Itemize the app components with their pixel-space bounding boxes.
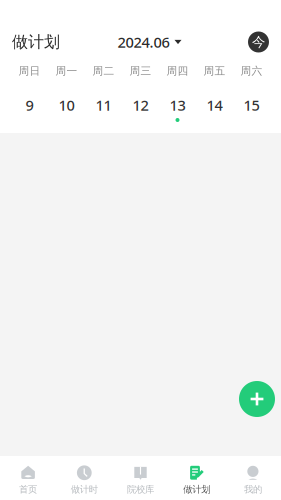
button[interactable]: 院校库: [112, 465, 169, 495]
staticText: 10: [58, 95, 74, 115]
button[interactable]: 首页: [0, 465, 56, 495]
staticText: 周五: [203, 64, 225, 77]
staticText: 周四: [166, 64, 188, 77]
staticText: 做计划: [12, 32, 60, 52]
staticText: 院校库: [127, 484, 154, 495]
staticText: 9: [25, 95, 33, 115]
staticText: 今: [252, 34, 265, 50]
staticText: 12: [132, 95, 148, 115]
staticText: 做计划: [183, 484, 210, 495]
button[interactable]: 新建计划: [239, 381, 275, 417]
button[interactable]: 回到今天: [248, 31, 269, 52]
staticText: 周六: [240, 64, 262, 77]
staticText: 我的: [244, 484, 262, 495]
staticText: 15: [243, 95, 259, 115]
staticText: 周二: [92, 64, 114, 77]
staticText: 2024.06: [117, 32, 169, 52]
staticText: 13: [169, 95, 185, 115]
staticText: 11: [95, 95, 111, 115]
button[interactable]: 做计划: [169, 465, 225, 495]
staticText: 做计时: [71, 484, 98, 495]
staticText: 周日: [18, 64, 40, 77]
button[interactable]: 2024.06: [99, 32, 181, 52]
button[interactable]: 我的: [225, 465, 281, 495]
staticText: 14: [206, 95, 222, 115]
staticText: 首页: [19, 484, 37, 495]
button[interactable]: 做计时: [56, 465, 112, 495]
staticText: 周三: [129, 64, 151, 77]
staticText: 周一: [55, 64, 77, 77]
